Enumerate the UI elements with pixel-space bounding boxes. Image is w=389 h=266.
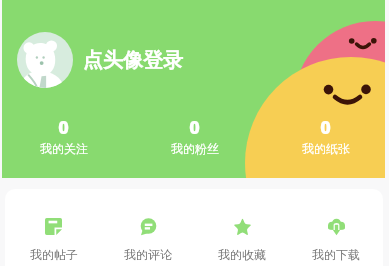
button[interactable]: 0 <box>129 115 260 156</box>
button[interactable]: 0 <box>2 115 129 156</box>
button[interactable]: 我的评论 <box>101 218 195 262</box>
button[interactable]: 我的下载 <box>289 218 383 262</box>
button[interactable]: 0 <box>260 115 385 156</box>
staticText: 我的关注 <box>40 141 88 156</box>
staticText: 我的纸张 <box>302 141 350 156</box>
button[interactable]: 头像 <box>17 32 73 88</box>
staticText: 我的收藏 <box>218 247 266 262</box>
staticText: 我的评论 <box>124 247 172 262</box>
staticText: 我的下载 <box>312 247 360 262</box>
staticText: 0 <box>189 115 200 140</box>
button[interactable]: 我的收藏 <box>195 218 289 262</box>
staticText: 0 <box>58 115 69 140</box>
button[interactable]: 我的帖子 <box>6 218 101 262</box>
staticText: 我的帖子 <box>30 247 78 262</box>
staticText: 0 <box>320 115 331 140</box>
staticText: 我的粉丝 <box>171 141 219 156</box>
button[interactable]: 点头像登录 <box>83 48 183 73</box>
